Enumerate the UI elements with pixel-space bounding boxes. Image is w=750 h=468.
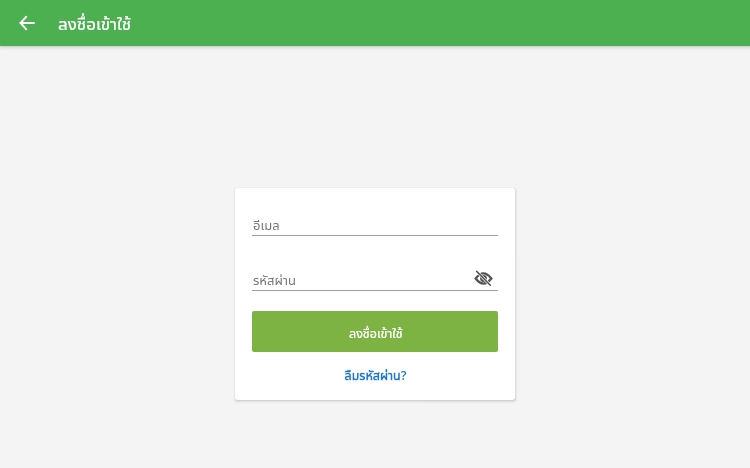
- staticText: รหัสผ่าน: [253, 271, 297, 289]
- staticText: ลงชื่อเข้าใช้: [349, 325, 403, 342]
- staticText: ลืมรหัสผ่าน?: [344, 367, 407, 384]
- button[interactable]: ลงชื่อเข้าใช้: [252, 311, 498, 352]
- staticText: อีเมล: [253, 216, 280, 234]
- staticText: ลงชื่อเข้าใช้: [58, 12, 132, 35]
- button[interactable]: Back: [10, 6, 44, 40]
- button[interactable]: ลืมรหัสผ่าน?: [252, 362, 498, 388]
- button[interactable]: Show password: [465, 260, 501, 296]
